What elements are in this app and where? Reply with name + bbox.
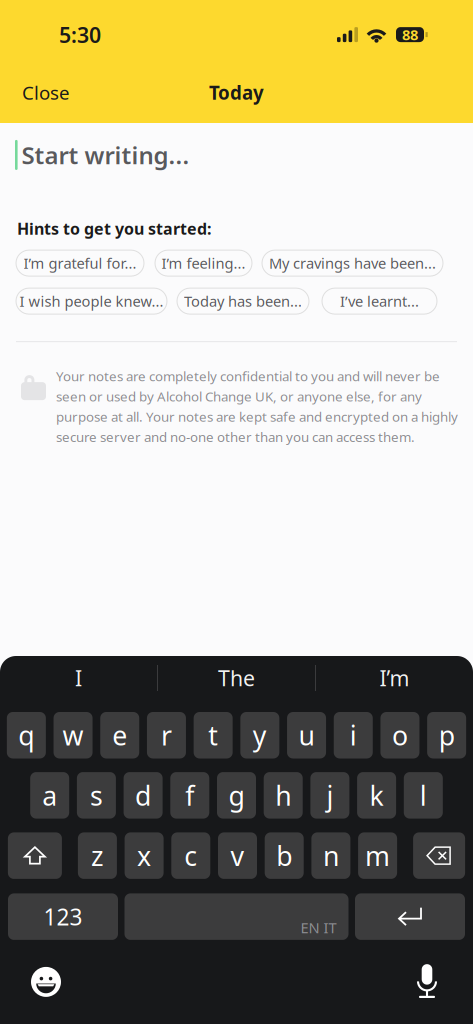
staticText: e (112, 717, 127, 753)
staticText: q (18, 717, 34, 753)
button[interactable]: q (7, 712, 46, 758)
staticText: m (365, 838, 390, 873)
button[interactable]: t (194, 712, 233, 758)
button[interactable]: m (358, 832, 397, 879)
button[interactable]: I’m (316, 658, 473, 698)
button[interactable]: y (240, 712, 279, 758)
staticText: EN IT (300, 918, 336, 937)
staticText: I’m grateful for... (23, 253, 136, 273)
staticText: The (218, 664, 255, 692)
button[interactable]: a (30, 772, 69, 819)
button[interactable]: Shift (8, 832, 62, 879)
button[interactable]: Delete (413, 832, 465, 879)
button[interactable]: d (124, 772, 163, 819)
staticText: I wish people knew... (19, 291, 163, 311)
button[interactable]: I’m grateful for... (16, 250, 144, 276)
staticText: v (230, 838, 244, 873)
staticText: My cravings have been... (269, 253, 436, 273)
staticText: u (298, 717, 314, 753)
staticText: Start writing... (22, 139, 190, 171)
staticText: Your notes are completely confidential t… (56, 367, 458, 446)
staticText: I’ve learnt... (340, 291, 419, 311)
button[interactable]: h (264, 772, 303, 819)
button[interactable]: n (311, 832, 350, 879)
button[interactable]: w (53, 712, 92, 758)
button[interactable]: b (265, 832, 304, 879)
button[interactable]: I’m feeling... (155, 250, 252, 276)
staticText: d (135, 778, 151, 813)
button[interactable]: The (158, 658, 315, 698)
staticText: Close (22, 80, 70, 105)
staticText: j (326, 778, 333, 813)
staticText: y (253, 717, 267, 753)
button[interactable]: z (78, 832, 117, 879)
button[interactable]: i (334, 712, 373, 758)
staticText: g (228, 778, 244, 813)
staticText: t (208, 717, 218, 753)
staticText: I’m (379, 664, 409, 692)
staticText: k (370, 778, 384, 813)
staticText: Hints to get you started: (17, 218, 211, 239)
staticText: b (276, 838, 292, 873)
staticText: p (439, 717, 455, 753)
staticText: c (184, 838, 197, 873)
staticText: o (392, 717, 408, 753)
staticText: h (275, 778, 291, 813)
button[interactable]: p (427, 712, 466, 758)
staticText: x (137, 838, 151, 873)
staticText: I’m feeling... (161, 253, 245, 273)
staticText: s (90, 778, 103, 813)
button[interactable]: e (100, 712, 139, 758)
button[interactable]: Today has been... (177, 288, 309, 314)
button[interactable]: My cravings have been... (262, 250, 443, 276)
staticText: Today has been... (184, 291, 302, 311)
button[interactable]: v (218, 832, 257, 879)
button[interactable]: s (77, 772, 116, 819)
button[interactable]: I’ve learnt... (322, 288, 437, 314)
staticText: n (323, 838, 339, 873)
staticText: I (75, 664, 82, 692)
button[interactable]: I wish people knew... (16, 288, 167, 314)
staticText: 123 (43, 902, 82, 932)
staticText: i (350, 717, 357, 753)
button[interactable]: o (380, 712, 419, 758)
button[interactable]: r (147, 712, 186, 758)
button[interactable]: Dictate (405, 960, 449, 1004)
staticText: 88 (402, 25, 418, 44)
button[interactable]: Close (16, 72, 76, 113)
button[interactable]: k (357, 772, 396, 819)
button[interactable]: u (287, 712, 326, 758)
button[interactable]: c (171, 832, 210, 879)
button[interactable]: 123 (8, 893, 118, 940)
staticText: l (420, 778, 427, 813)
staticText: z (91, 838, 104, 873)
staticText: Today (209, 80, 264, 105)
button[interactable]: g (217, 772, 256, 819)
button[interactable]: x (125, 832, 164, 879)
button[interactable]: Space (124, 893, 348, 940)
staticText: a (42, 778, 57, 813)
staticText: 5:30 (59, 20, 101, 49)
button[interactable]: j (310, 772, 349, 819)
staticText: r (161, 717, 172, 753)
button[interactable]: f (170, 772, 209, 819)
button[interactable]: Emoji (24, 960, 68, 1004)
button[interactable]: I (0, 658, 157, 698)
button[interactable]: Return (355, 893, 465, 940)
button[interactable]: l (404, 772, 443, 819)
staticText: f (185, 778, 194, 813)
staticText: w (62, 717, 83, 753)
